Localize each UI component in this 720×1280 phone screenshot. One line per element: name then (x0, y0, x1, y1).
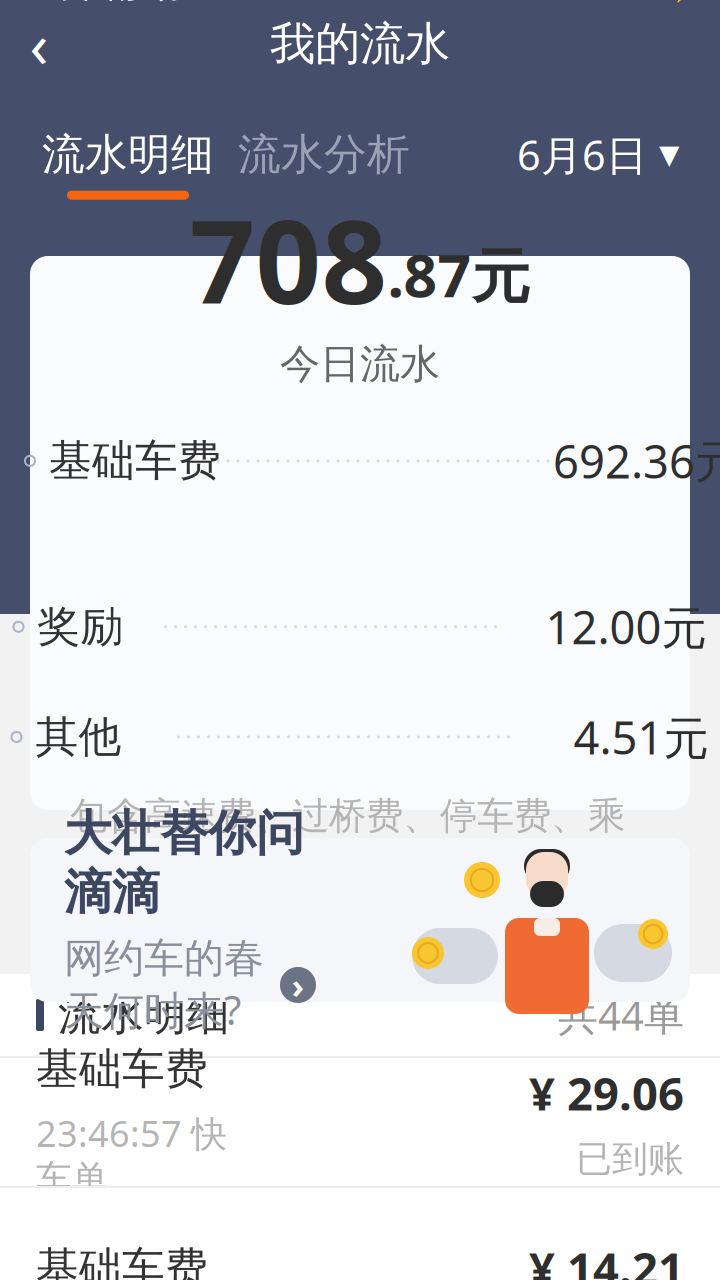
staticText: 奖励 (37, 601, 123, 653)
button[interactable]: 大壮替你问滴滴 (0, 838, 720, 1002)
staticText: 共44单 (558, 988, 684, 1041)
staticText: 流水明细 (58, 989, 230, 1041)
button[interactable]: 6月6日 (517, 127, 720, 201)
staticText: 692.36元 (553, 431, 720, 491)
staticText: 中国移动 (49, 0, 181, 6)
staticText: 包含高速费、过桥费、停车费、乘客加价、远程调 度费、感谢红包和其他 (70, 793, 625, 931)
button[interactable]: 返回 (0, 8, 78, 80)
staticText: .87元 (387, 236, 530, 313)
staticText: 其他 (35, 711, 121, 763)
staticText: 12.00元 (545, 597, 706, 657)
staticText: ▼ (659, 139, 680, 170)
staticText: 大壮替你问滴滴 (64, 804, 304, 922)
staticText: 基础车费 (49, 435, 221, 487)
staticText: ¥ 29.06 (529, 1063, 684, 1123)
staticText: ‹ (29, 3, 48, 85)
button[interactable]: 基础车费 (0, 1058, 720, 1186)
button[interactable]: 流水明细 (0, 128, 226, 200)
staticText: 我的流水 (270, 16, 450, 72)
staticText: ⚡ (669, 0, 706, 3)
button[interactable]: 基础车费 (0, 1188, 720, 1280)
staticText: 6月6日 (517, 127, 647, 182)
staticText: 流水明细 (42, 128, 214, 181)
staticText: ¥ 14.21 (529, 1238, 684, 1280)
staticText: 流水分析 (238, 128, 410, 181)
staticText: 网约车的春天何时来? (64, 934, 264, 1036)
staticText: 今日流水 (280, 340, 440, 389)
staticText: 4.51元 (573, 707, 708, 767)
button[interactable]: 流水分析 (226, 128, 422, 200)
staticText: › (291, 962, 304, 1008)
staticText: 708 (189, 183, 387, 336)
staticText: 基础车费 (36, 1242, 208, 1280)
staticText: 23:46:57 快车单 (36, 1109, 227, 1201)
staticText: 已到账 (576, 1137, 684, 1181)
staticText: 基础车费 (36, 1043, 208, 1095)
